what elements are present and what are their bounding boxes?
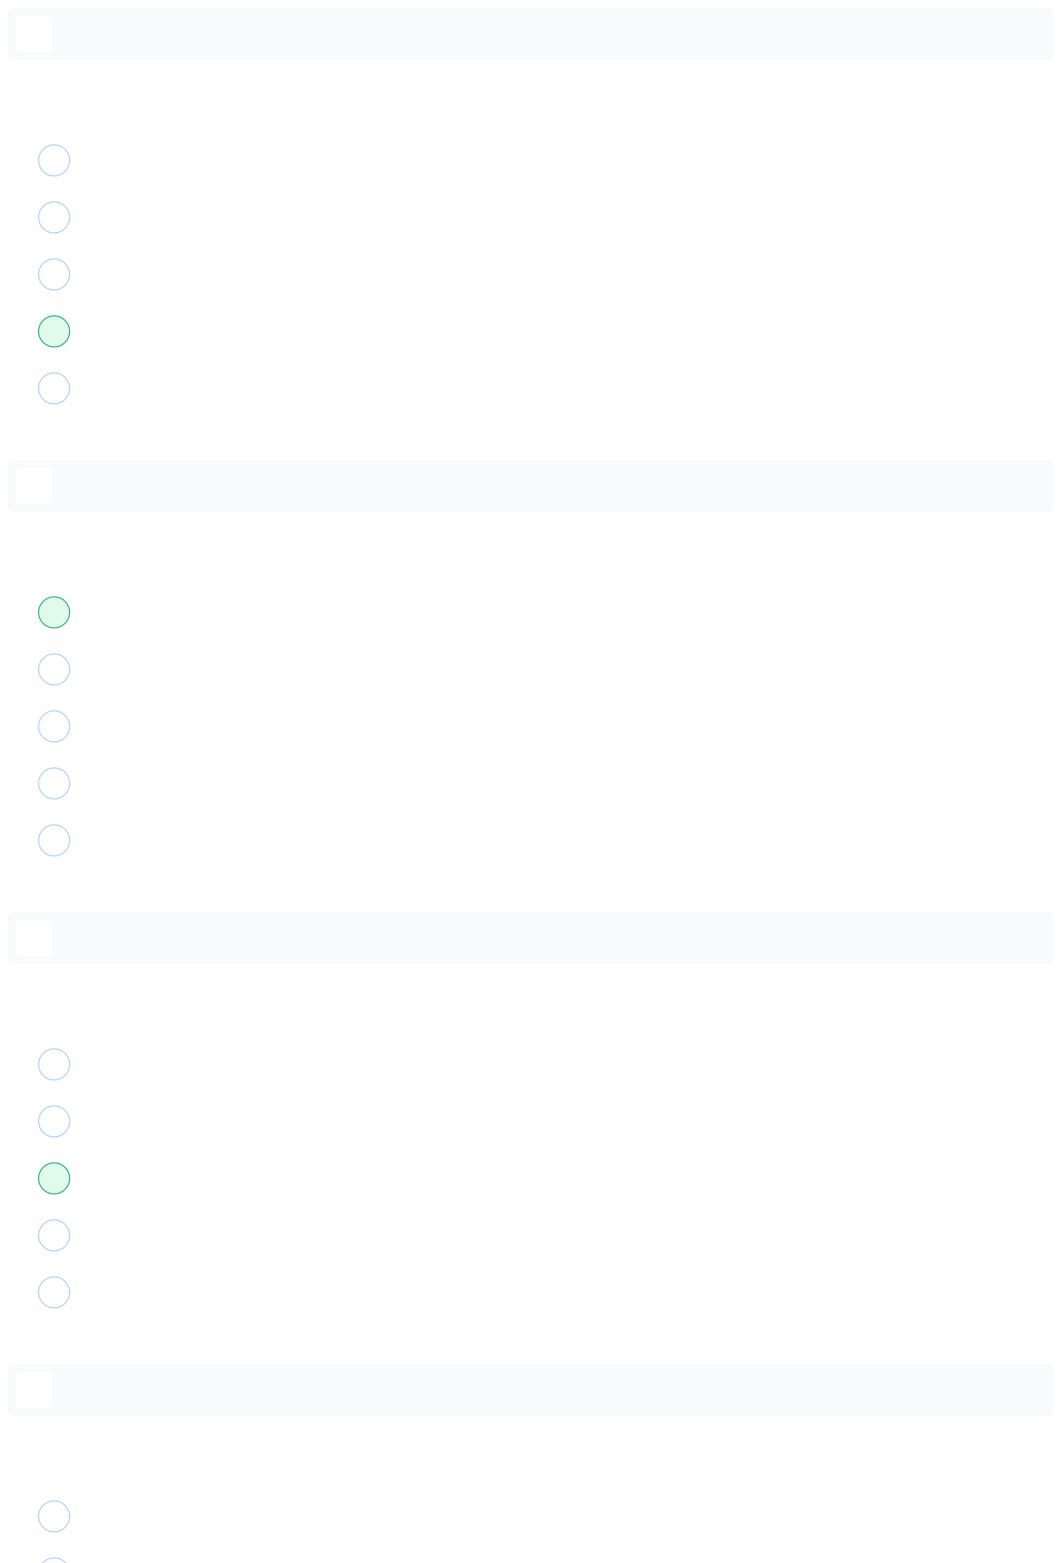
button[interactable]: Answer 1, selected <box>0 584 1062 641</box>
button[interactable]: Answer 3 <box>0 246 1062 303</box>
button[interactable]: Answer 2 <box>0 641 1062 698</box>
button[interactable]: Answer 5 <box>0 360 1062 417</box>
button[interactable]: Answer 2 <box>0 189 1062 246</box>
button[interactable]: Answer 1 <box>0 1488 1062 1545</box>
button[interactable]: Answer 2 <box>0 1093 1062 1150</box>
button[interactable]: Answer 3, selected <box>0 1150 1062 1207</box>
button[interactable]: Answer 5 <box>0 1264 1062 1321</box>
button[interactable]: Answer 4, selected <box>0 303 1062 360</box>
button[interactable]: Answer 4 <box>0 1207 1062 1264</box>
button[interactable]: Answer 1 <box>0 132 1062 189</box>
button[interactable]: Answer 5 <box>0 812 1062 869</box>
button[interactable]: Answer 1 <box>0 1036 1062 1093</box>
button[interactable]: Answer 4 <box>0 755 1062 812</box>
button[interactable]: Answer 3 <box>0 698 1062 755</box>
